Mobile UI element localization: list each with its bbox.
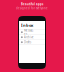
button[interactable]: Messages <box>19 30 45 34</box>
staticText: Drafts <box>24 40 31 44</box>
button[interactable]: Drafts <box>19 40 45 44</box>
staticText: Inbox <box>21 23 33 28</box>
staticText: Messages <box>24 29 34 36</box>
staticText: Beautiful apps <box>21 2 43 6</box>
staticText: Archive <box>24 35 34 39</box>
button[interactable]: Archive <box>19 35 45 39</box>
staticText: designed for everyone <box>16 6 48 10</box>
